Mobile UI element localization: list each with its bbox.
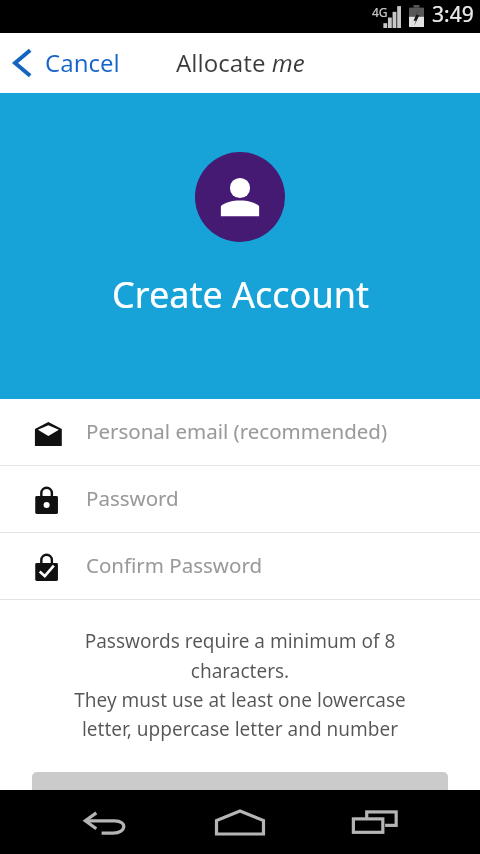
button[interactable]: Cancel	[0, 33, 158, 93]
staticText: Personal email (recommended)	[86, 417, 388, 445]
button[interactable]: Back	[67, 790, 145, 854]
button[interactable]: Password	[0, 466, 480, 532]
staticText: Create Account	[112, 270, 369, 319]
button[interactable]: Home	[201, 790, 279, 854]
button[interactable]: Personal email (recommended)	[0, 399, 480, 465]
staticText: 3:49	[432, 0, 474, 28]
staticText: Allocate me	[176, 46, 305, 79]
staticText: 4G	[372, 4, 388, 20]
button[interactable]: Confirm Password	[0, 533, 480, 599]
staticText: Password	[86, 484, 179, 512]
staticText: Passwords require a minimum of 8 charact…	[50, 628, 430, 741]
staticText: Confirm Password	[86, 551, 263, 579]
staticText: Cancel	[45, 46, 120, 79]
button[interactable]: Recents	[336, 790, 414, 854]
button[interactable]: Create Account	[32, 772, 448, 830]
